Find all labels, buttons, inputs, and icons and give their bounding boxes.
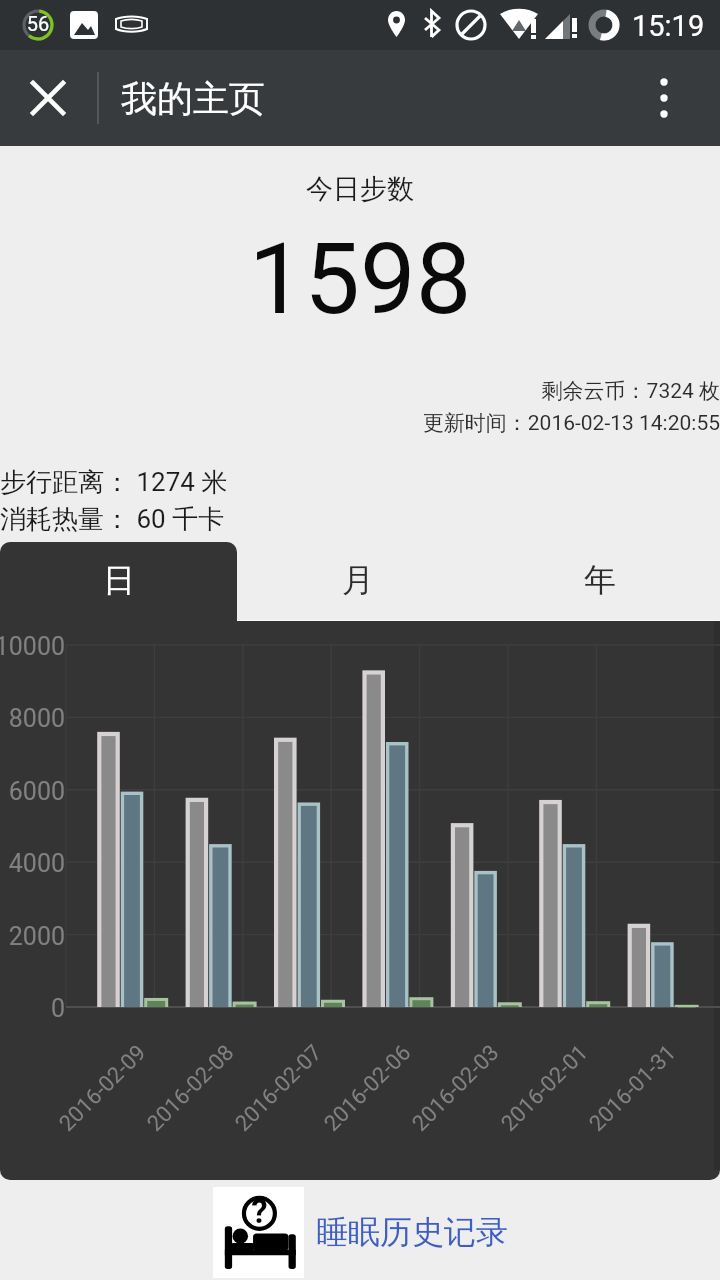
staticText: 56 [23,12,53,35]
staticText: 15:19 [632,9,705,43]
button[interactable]: 年 [479,542,720,621]
staticText: 6000 [0,777,65,806]
staticText: 年 [584,560,616,600]
staticText: 2016-02-07 [230,1039,328,1137]
button[interactable]: Close [0,50,96,146]
staticText: 步行距离： 1274 米 [0,466,228,499]
staticText: 2016-01-31 [584,1039,682,1137]
staticText: 2016-02-01 [496,1039,594,1137]
button[interactable]: More options [624,50,720,146]
staticText: 1598 [0,221,720,337]
staticText: 更新时间：2016-02-13 14:20:55 [0,410,720,436]
staticText: 今日步数 [0,172,720,206]
staticText: 2000 [0,922,65,951]
button[interactable]: 日 [0,542,237,623]
staticText: 2016-02-03 [407,1039,505,1137]
staticText: 日 [103,560,135,600]
staticText: 睡眠历史记录 [316,1212,508,1252]
staticText: ? [214,1192,305,1280]
staticText: 月 [342,560,374,600]
staticText: 2016-02-09 [54,1039,152,1137]
button[interactable]: ? [0,1186,508,1278]
staticText: 2016-02-08 [142,1039,240,1137]
staticText: 我的主页 [121,76,265,121]
button[interactable]: 月 [237,542,479,621]
staticText: 消耗热量： 60 千卡 [0,503,225,536]
staticText: 10000 [0,632,65,661]
staticText: 8000 [0,704,65,733]
staticText: 0 [0,994,65,1023]
staticText: 剩余云币：7324 枚 [0,378,720,404]
staticText: 2016-02-06 [319,1039,417,1137]
staticText: 4000 [0,849,65,878]
